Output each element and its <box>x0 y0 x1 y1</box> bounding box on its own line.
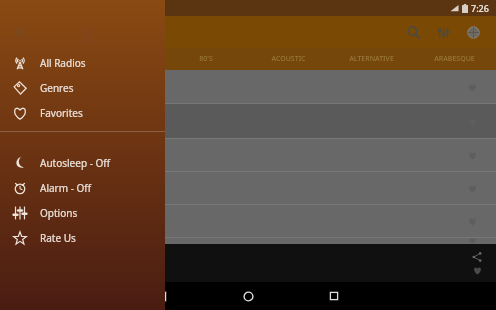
button[interactable]: Recent apps <box>311 282 357 310</box>
button[interactable]: All Radios <box>0 50 165 75</box>
button[interactable]: Search <box>398 17 428 47</box>
staticText: Autosleep - Off <box>40 156 111 170</box>
button[interactable]: Alarm - Off <box>0 175 165 200</box>
button[interactable]: Back <box>139 282 185 310</box>
staticText: ACOUSTIC <box>271 54 306 64</box>
button[interactable]: Equalizer <box>428 17 458 47</box>
button[interactable]: Favorite <box>0 171 496 204</box>
button[interactable]: ACOUSTIC <box>247 48 330 70</box>
staticText: All Radios <box>40 56 86 70</box>
button[interactable]: Rate Us <box>0 225 165 250</box>
button[interactable]: Close <box>8 21 32 45</box>
staticText: ARABESQUE <box>434 54 475 64</box>
button[interactable]: Favorite <box>0 237 496 244</box>
staticText: Genres <box>40 81 74 95</box>
button[interactable]: Genres <box>0 75 165 100</box>
button[interactable]: Options <box>0 200 165 225</box>
button[interactable]: Home <box>225 282 271 310</box>
staticText: Rate Us <box>40 231 76 245</box>
button[interactable]: Favorite <box>0 204 496 237</box>
button[interactable]: Favorite <box>0 138 496 171</box>
staticText: ALTERNATIVE <box>349 54 394 64</box>
button[interactable]: 80'S <box>165 48 247 70</box>
button[interactable]: Favorite <box>462 237 482 244</box>
button[interactable]: Share <box>468 248 486 266</box>
staticText: 80'S <box>199 54 213 64</box>
staticText: 7:26 <box>471 2 489 14</box>
button[interactable]: Favorite station <box>468 261 486 279</box>
staticText: Favorites <box>40 106 83 120</box>
button[interactable]: Favorite <box>0 70 496 103</box>
button[interactable]: Favorite <box>0 103 496 138</box>
button[interactable]: Favorites <box>0 100 165 125</box>
button[interactable]: Autosleep - Off <box>0 150 165 175</box>
button[interactable]: ARABESQUE <box>413 48 496 70</box>
staticText: Alarm - Off <box>40 181 92 195</box>
button[interactable]: ALTERNATIVE <box>330 48 413 70</box>
staticText: Options <box>40 206 78 220</box>
button[interactable]: Language <box>458 17 488 47</box>
